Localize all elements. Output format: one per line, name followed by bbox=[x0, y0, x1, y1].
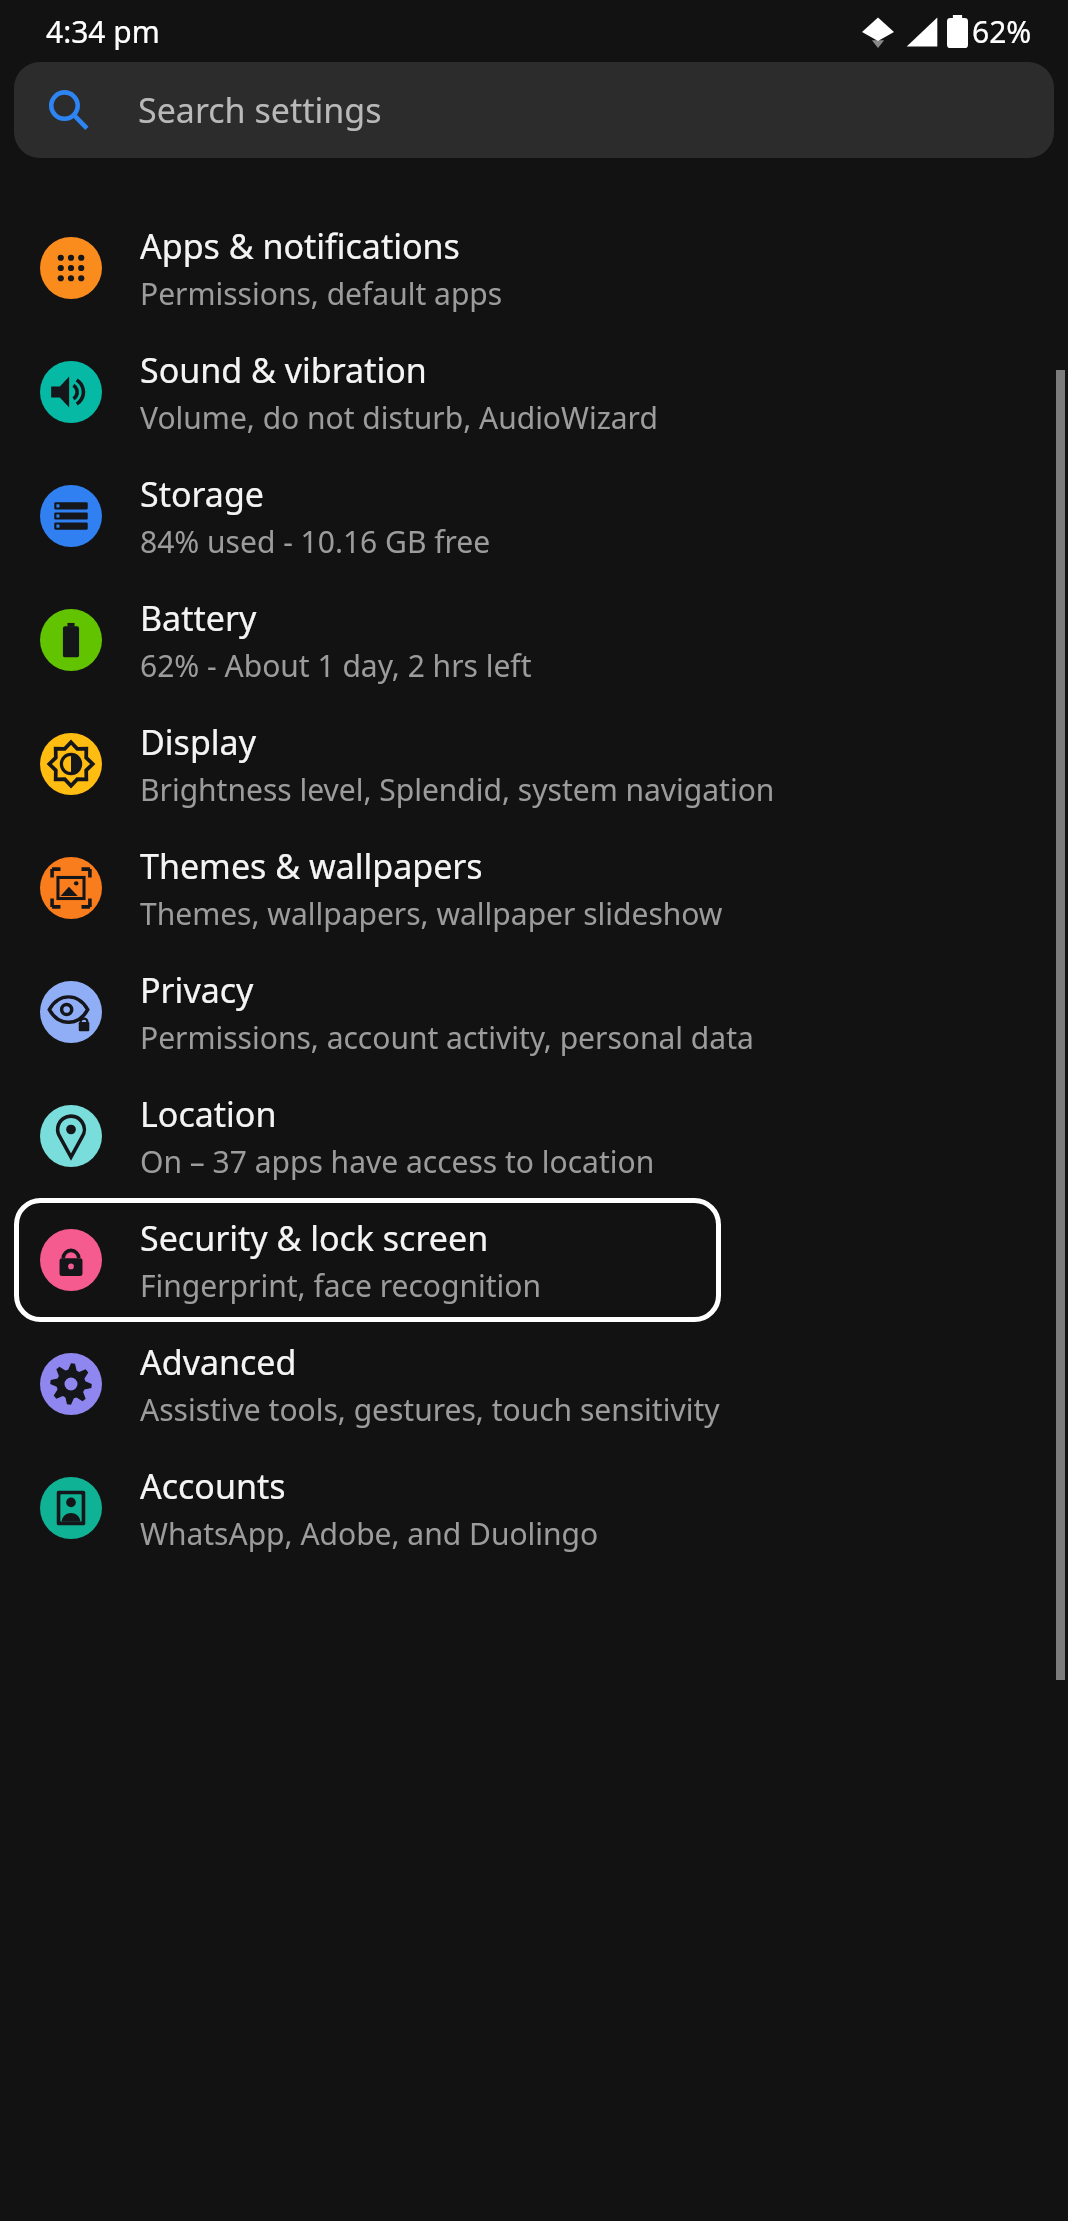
staticText: Assistive tools, gestures, touch sensiti… bbox=[140, 1389, 720, 1430]
button[interactable]: Privacy bbox=[0, 950, 1068, 1074]
other: Search bbox=[46, 88, 90, 132]
button[interactable]: Advanced bbox=[0, 1322, 1068, 1446]
staticText: Apps & notifications bbox=[140, 223, 460, 269]
staticText: Storage bbox=[140, 471, 265, 517]
staticText: Privacy bbox=[140, 967, 254, 1013]
staticText: Advanced bbox=[140, 1339, 297, 1385]
button[interactable]: Battery bbox=[0, 578, 1068, 702]
staticText: Permissions, default apps bbox=[140, 273, 503, 314]
staticText: 4:34 pm bbox=[46, 11, 160, 52]
button[interactable]: Location bbox=[0, 1074, 1068, 1198]
staticText: 84% used - 10.16 GB free bbox=[140, 521, 491, 562]
button[interactable]: Accounts bbox=[0, 1446, 1068, 1570]
staticText: Permissions, account activity, personal … bbox=[140, 1017, 754, 1058]
button[interactable]: Display bbox=[0, 702, 1068, 826]
button[interactable]: Apps & notifications bbox=[0, 206, 1068, 330]
button[interactable]: Security & lock screen bbox=[14, 1198, 721, 1322]
staticText: On – 37 apps have access to location bbox=[140, 1141, 655, 1182]
button[interactable]: Themes & wallpapers bbox=[0, 826, 1068, 950]
staticText: Fingerprint, face recognition bbox=[140, 1265, 541, 1306]
staticText: Themes & wallpapers bbox=[140, 843, 483, 889]
staticText: 62% - About 1 day, 2 hrs left bbox=[140, 645, 532, 686]
staticText: Security & lock screen bbox=[140, 1215, 489, 1261]
staticText: Accounts bbox=[140, 1463, 286, 1509]
button[interactable]: Search bbox=[14, 62, 1054, 158]
staticText: Themes, wallpapers, wallpaper slideshow bbox=[140, 893, 723, 934]
staticText: 62% bbox=[972, 11, 1032, 52]
staticText: Brightness level, Splendid, system navig… bbox=[140, 769, 775, 810]
staticText: Display bbox=[140, 719, 256, 765]
staticText: Sound & vibration bbox=[140, 347, 427, 393]
staticText: Location bbox=[140, 1091, 277, 1137]
staticText: WhatsApp, Adobe, and Duolingo bbox=[140, 1513, 599, 1554]
button[interactable]: Storage bbox=[0, 454, 1068, 578]
button[interactable]: Sound & vibration bbox=[0, 330, 1068, 454]
staticText: Volume, do not disturb, AudioWizard bbox=[140, 397, 658, 438]
staticText: Search settings bbox=[138, 87, 382, 133]
staticText: Battery bbox=[140, 595, 257, 641]
